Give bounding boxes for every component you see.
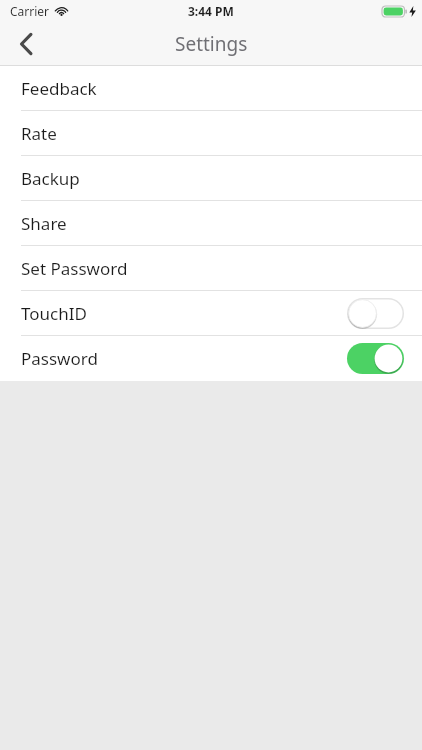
button[interactable]: TouchID — [0, 291, 422, 336]
staticText: Rate — [21, 122, 57, 145]
button[interactable]: Toggle on — [347, 343, 404, 374]
button[interactable]: Toggle off — [347, 298, 404, 329]
button[interactable]: Rate — [0, 111, 422, 156]
button[interactable]: Set Password — [0, 246, 422, 291]
staticText: TouchID — [21, 302, 87, 325]
staticText: 3:44 PM — [188, 3, 234, 19]
button[interactable]: Password — [0, 336, 422, 381]
button[interactable]: Back — [0, 22, 52, 66]
button[interactable]: Feedback — [0, 66, 422, 111]
staticText: Set Password — [21, 257, 128, 280]
button[interactable]: Backup — [0, 156, 422, 201]
staticText: Feedback — [21, 77, 97, 100]
staticText: Backup — [21, 167, 80, 190]
staticText: Share — [21, 212, 67, 235]
staticText: Password — [21, 347, 98, 370]
button[interactable]: Share — [0, 201, 422, 246]
staticText: Carrier — [10, 3, 50, 19]
staticText: Settings — [175, 31, 248, 57]
